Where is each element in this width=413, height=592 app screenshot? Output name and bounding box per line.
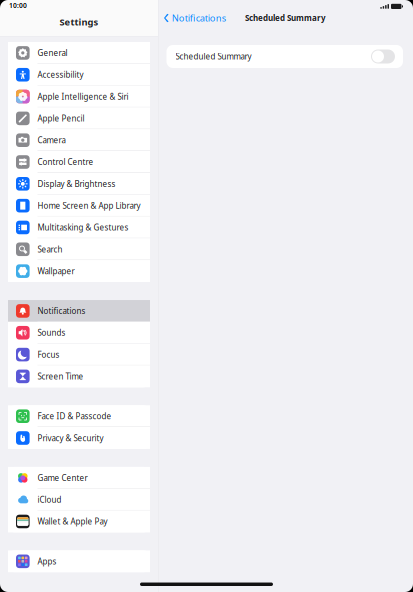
button[interactable]: Apple Pencil [8, 107, 150, 129]
staticText: Focus [38, 349, 60, 360]
staticText: Wallet & Apple Pay [38, 516, 108, 527]
button[interactable]: Display & Brightness [8, 173, 150, 195]
staticText: Home Screen & App Library [38, 200, 141, 211]
button[interactable]: Camera [8, 129, 150, 151]
staticText: Notifications [172, 12, 226, 24]
staticText: Search [38, 244, 63, 255]
button[interactable]: Search [8, 238, 150, 260]
staticText: Face ID & Passcode [38, 411, 112, 421]
button[interactable]: Multitasking & Gestures [8, 217, 150, 238]
staticText: Apple Pencil [38, 113, 85, 124]
staticText: 10:00 [9, 1, 27, 10]
button[interactable]: Scheduled Summary [158, 45, 413, 68]
staticText: Multitasking & Gestures [38, 222, 129, 233]
button[interactable]: Face ID & Passcode [8, 405, 150, 427]
staticText: iCloud [38, 494, 62, 505]
staticText: Screen Time [38, 371, 84, 382]
staticText: Control Centre [38, 157, 94, 167]
staticText: Scheduled Summary [245, 13, 326, 23]
staticText: Notifications [38, 306, 86, 316]
button[interactable]: Notifications [158, 8, 230, 28]
button[interactable]: Game Center [8, 467, 150, 489]
staticText: Camera [38, 135, 66, 145]
button[interactable]: Control Centre [8, 151, 150, 173]
button[interactable]: iCloud [8, 489, 150, 511]
staticText: Accessibility [38, 69, 84, 80]
button[interactable]: Apps [8, 550, 150, 572]
staticText: General [38, 48, 68, 58]
button[interactable]: Wallet & Apple Pay [8, 511, 150, 532]
staticText: Scheduled Summary [175, 51, 251, 62]
button[interactable]: Screen Time [8, 365, 150, 387]
staticText: Apps [38, 556, 57, 567]
button[interactable]: Wallpaper [8, 260, 150, 282]
button[interactable]: Privacy & Security [8, 427, 150, 449]
staticText: Privacy & Security [38, 433, 104, 443]
staticText: Display & Brightness [38, 178, 116, 189]
button[interactable]: Home Screen & App Library [8, 195, 150, 216]
staticText: Apple Intelligence & Siri [38, 91, 129, 102]
staticText: Game Center [38, 472, 88, 483]
staticText: Settings [59, 16, 98, 28]
button[interactable]: Sounds [8, 322, 150, 344]
button[interactable]: Accessibility [8, 64, 150, 86]
button[interactable]: General [8, 42, 150, 64]
staticText: Sounds [38, 327, 66, 338]
button[interactable]: Notifications [8, 300, 150, 322]
staticText: Wallpaper [38, 266, 75, 276]
button[interactable]: Focus [8, 344, 150, 365]
button[interactable]: Apple Intelligence & Siri [8, 86, 150, 107]
